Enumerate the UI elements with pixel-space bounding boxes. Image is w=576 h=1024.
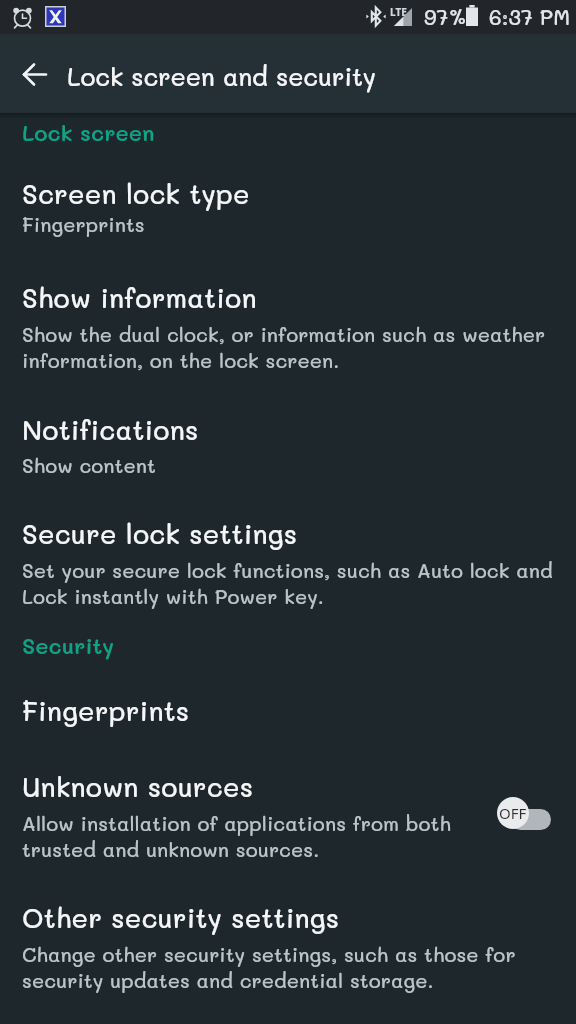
staticText: Fingerprints — [22, 694, 190, 728]
button[interactable]: Fingerprints — [0, 670, 576, 742]
button[interactable]: Other security settings — [0, 876, 576, 1002]
staticText: Change other security settings, such as … — [22, 941, 516, 993]
staticText: 6:37 PM — [489, 3, 571, 30]
staticText: OFF — [499, 803, 527, 823]
staticText: Lock screen — [22, 120, 155, 146]
staticText: Secure lock settings — [22, 517, 298, 551]
other: Bluetooth connected — [366, 7, 386, 26]
staticText: Unknown sources — [22, 770, 254, 804]
staticText: Allow installation of applications from … — [22, 810, 451, 862]
button[interactable]: Secure lock settings — [0, 492, 576, 618]
staticText: 97% — [424, 3, 468, 30]
staticText: Notifications — [22, 413, 199, 447]
button[interactable]: Navigate up — [7, 46, 63, 102]
button[interactable]: Notifications — [0, 390, 576, 484]
staticText: Lock screen and security — [67, 60, 376, 92]
staticText: Fingerprints — [22, 211, 145, 237]
staticText: Other security settings — [22, 901, 340, 935]
staticText: Show the dual clock, or information such… — [22, 321, 546, 373]
button[interactable]: Unknown sources, off — [497, 797, 551, 829]
staticText: Show content — [22, 452, 156, 478]
other: App notification — [45, 6, 66, 27]
button[interactable]: Screen lock type — [0, 152, 576, 248]
button[interactable]: Unknown sources — [0, 746, 576, 870]
staticText: Security — [22, 633, 115, 659]
other: Alarm set — [13, 6, 32, 27]
staticText: Show information — [22, 281, 257, 315]
button[interactable]: Show information — [0, 256, 576, 384]
staticText: Screen lock type — [22, 177, 250, 211]
staticText: LTE — [390, 5, 407, 19]
staticText: Set your secure lock functions, such as … — [22, 557, 553, 609]
